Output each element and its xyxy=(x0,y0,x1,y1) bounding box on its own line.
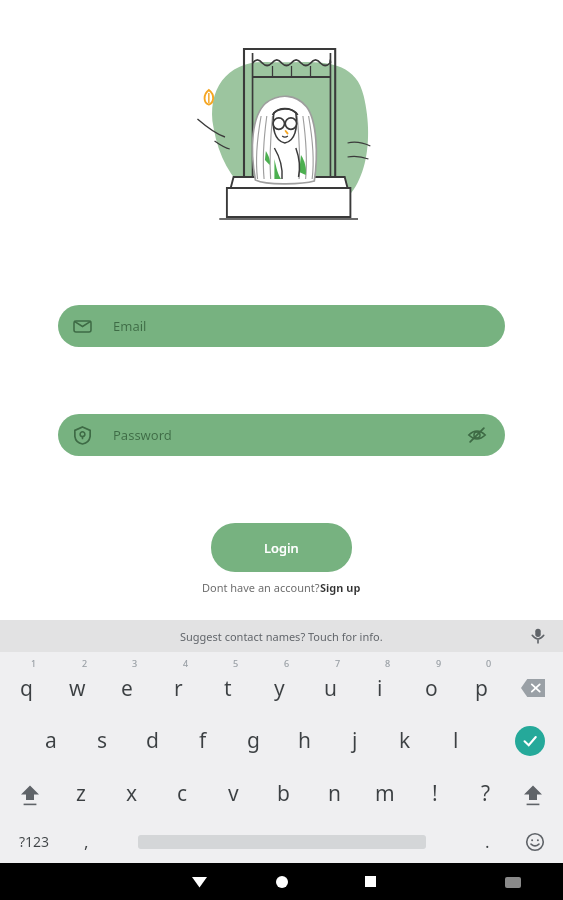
button[interactable]: d xyxy=(127,714,177,767)
button[interactable]: Back xyxy=(177,863,221,900)
staticText: 5 xyxy=(233,657,239,669)
button[interactable]: a xyxy=(26,714,76,767)
staticText: h xyxy=(298,726,311,755)
staticText: n xyxy=(328,779,341,808)
button[interactable]: 5 xyxy=(203,652,253,714)
button[interactable]: l xyxy=(431,714,481,767)
staticText: ! xyxy=(432,779,438,808)
staticText: y xyxy=(274,674,285,703)
button[interactable]: Suggest contact names? Touch for info. xyxy=(0,620,563,652)
button[interactable]: Sign up xyxy=(320,580,361,595)
button[interactable]: 2 xyxy=(52,652,102,714)
staticText: Email xyxy=(113,317,147,335)
staticText: a xyxy=(45,726,57,755)
button[interactable]: ? xyxy=(461,767,511,820)
staticText: t xyxy=(224,674,232,703)
staticText: o xyxy=(425,674,438,703)
staticText: 3 xyxy=(132,657,138,669)
button[interactable]: j xyxy=(330,714,380,767)
staticText: w xyxy=(69,674,86,703)
button[interactable]: s xyxy=(77,714,127,767)
staticText: s xyxy=(97,726,108,755)
button[interactable]: z xyxy=(56,767,106,820)
staticText: 2 xyxy=(82,657,88,669)
button[interactable]: v xyxy=(208,767,258,820)
button[interactable]: 6 xyxy=(254,652,304,714)
staticText: 0 xyxy=(486,657,492,669)
staticText: Sign up xyxy=(320,580,361,595)
button[interactable]: Password xyxy=(58,414,505,456)
staticText: Login xyxy=(264,539,299,557)
button[interactable]: g xyxy=(228,714,278,767)
button[interactable]: x xyxy=(107,767,157,820)
button[interactable]: 8 xyxy=(355,652,405,714)
staticText: j xyxy=(352,726,358,755)
staticText: 7 xyxy=(335,657,341,669)
staticText: b xyxy=(277,779,290,808)
staticText: 8 xyxy=(385,657,391,669)
staticText: u xyxy=(324,674,337,703)
button[interactable]: 0 xyxy=(456,652,506,714)
button[interactable]: 1 xyxy=(1,652,51,714)
staticText: d xyxy=(146,726,159,755)
button[interactable]: b xyxy=(258,767,308,820)
button[interactable]: Show password xyxy=(465,423,489,447)
button[interactable]: f xyxy=(178,714,228,767)
button[interactable]: Shift xyxy=(10,774,50,814)
staticText: r xyxy=(174,674,183,703)
button[interactable]: h xyxy=(279,714,329,767)
button[interactable]: c xyxy=(157,767,207,820)
button[interactable]: Shift xyxy=(513,774,553,814)
staticText: q xyxy=(20,674,33,703)
button[interactable]: Home xyxy=(260,863,304,900)
button[interactable]: n xyxy=(309,767,359,820)
staticText: . xyxy=(485,830,490,853)
staticText: 4 xyxy=(183,657,189,669)
button[interactable]: ?123 xyxy=(8,820,60,863)
staticText: z xyxy=(76,779,86,808)
button[interactable]: Enter xyxy=(515,726,545,756)
staticText: p xyxy=(475,674,488,703)
staticText: Password xyxy=(113,426,172,444)
button[interactable]: ! xyxy=(410,767,460,820)
staticText: k xyxy=(399,726,411,755)
staticText: x xyxy=(126,779,138,808)
button[interactable]: Voice input xyxy=(527,625,549,647)
staticText: 9 xyxy=(436,657,442,669)
staticText: v xyxy=(228,779,239,808)
staticText: i xyxy=(377,674,383,703)
staticText: g xyxy=(247,726,260,755)
staticText: Suggest contact names? Touch for info. xyxy=(180,629,383,644)
staticText: e xyxy=(121,674,133,703)
button[interactable]: m xyxy=(360,767,410,820)
button[interactable]: 7 xyxy=(305,652,355,714)
staticText: , xyxy=(84,830,89,853)
button[interactable]: Login xyxy=(211,523,352,572)
button[interactable]: . xyxy=(469,820,505,863)
staticText: c xyxy=(177,779,188,808)
staticText: m xyxy=(375,779,395,808)
staticText: f xyxy=(199,726,207,755)
staticText: ?123 xyxy=(19,832,50,851)
staticText: 6 xyxy=(284,657,290,669)
button[interactable]: Delete xyxy=(511,666,555,710)
button[interactable]: k xyxy=(380,714,430,767)
staticText: ? xyxy=(481,779,491,808)
staticText: 1 xyxy=(31,657,37,669)
staticText: l xyxy=(453,726,459,755)
button[interactable]: , xyxy=(66,820,106,863)
staticText: Dont have an account? xyxy=(202,580,320,595)
button[interactable]: Hide keyboard xyxy=(495,864,531,900)
button[interactable]: 3 xyxy=(102,652,152,714)
button[interactable]: Emoji xyxy=(517,824,553,860)
button[interactable]: 9 xyxy=(406,652,456,714)
button[interactable]: Recents xyxy=(348,863,392,900)
button[interactable]: 4 xyxy=(153,652,203,714)
button[interactable]: Email xyxy=(58,305,505,347)
